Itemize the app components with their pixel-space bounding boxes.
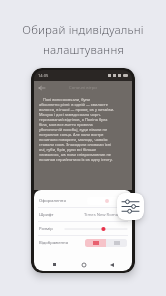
- button[interactable]: [85, 239, 127, 247]
- staticText: абсолютно різні: в одній — хвилясте: [39, 102, 108, 107]
- button[interactable]: Back: [37, 83, 46, 92]
- staticText: терикований відтінок, а Поліна була: [39, 117, 108, 122]
- button[interactable]: Оформлення: [34, 194, 132, 207]
- button[interactable]: Back: [107, 260, 116, 269]
- staticText: волосся, в іншої — пряме, як у китайки.: [39, 107, 115, 112]
- staticText: 14:05: [38, 73, 49, 78]
- staticText: Шрифт: [39, 212, 54, 218]
- staticText: починало говорити, молодь, чавоїм: [39, 137, 108, 142]
- staticText: очі, губи, брів, руки всі більше: [39, 147, 97, 152]
- staticText: потрапляє сонця. Але коли вострє: [39, 132, 104, 137]
- staticText: Обирай індивідуальні: [22, 22, 144, 38]
- staticText: Покі вони мовчали, були: [39, 97, 91, 102]
- staticText: убогонечній кособці, куди ніколи не: [39, 127, 108, 132]
- button[interactable]: Times New Roman: [84, 212, 127, 218]
- staticText: Розмір: [39, 226, 53, 232]
- staticText: Відображення: [39, 240, 69, 246]
- staticText: Сонячні вітри: [69, 85, 97, 91]
- staticText: Мачуха і досі завжди мала чорн-: [39, 112, 101, 117]
- staticText: біла, мов все життя провела: [39, 122, 93, 127]
- button[interactable]: Home: [79, 260, 88, 269]
- staticText: починав сприйнятися їх як одну істоту.: [39, 157, 113, 162]
- button[interactable]: Reading settings: [117, 193, 144, 220]
- staticText: Оформлення: [39, 198, 66, 204]
- staticText: зливались, аж поки співрозмовник не: [39, 152, 111, 157]
- staticText: Times New Roman: [84, 212, 121, 218]
- staticText: ставали схож. Знаходили словами їхні: [39, 142, 112, 147]
- button[interactable]: Recents: [50, 260, 59, 269]
- button[interactable]: [65, 224, 127, 234]
- button[interactable]: Розмір: [34, 222, 132, 235]
- button[interactable]: Відображення: [34, 236, 132, 249]
- staticText: налаштування: [43, 42, 124, 58]
- button[interactable]: Шрифт: [34, 208, 132, 221]
- button[interactable]: [87, 197, 127, 205]
